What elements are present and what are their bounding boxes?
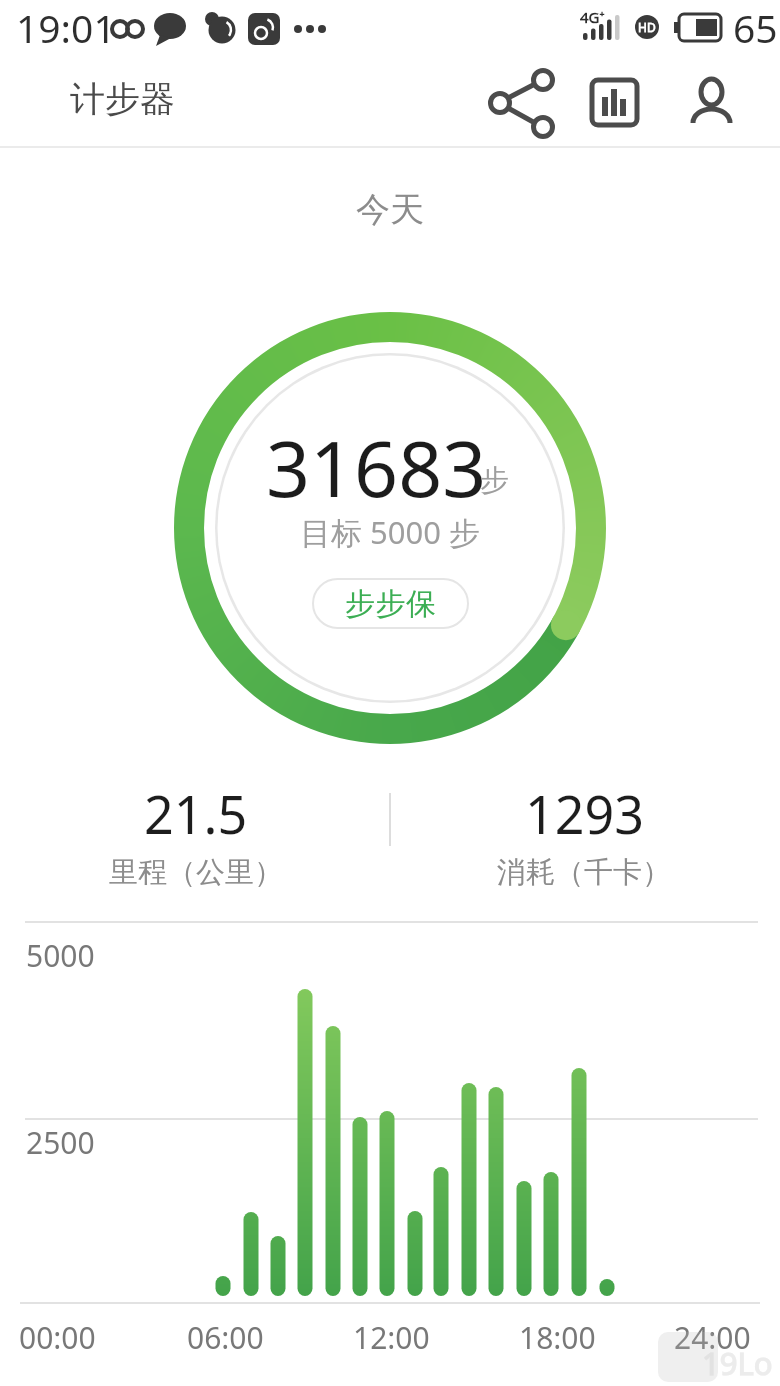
staticText: 目标 5000 步 [300, 511, 481, 549]
staticText: 步步保 [345, 585, 437, 623]
staticText: 步 [480, 462, 509, 498]
staticText: 计步器 [70, 77, 175, 121]
staticText: 1293 [525, 778, 644, 836]
staticText: 24:00 [674, 1317, 751, 1351]
staticText: 00:00 [19, 1317, 96, 1351]
staticText: 18:00 [519, 1317, 596, 1351]
staticText: 21.5 [144, 778, 248, 836]
staticText: 2500 [26, 1122, 95, 1158]
button[interactable]: 步步保 [312, 578, 469, 629]
staticText: 19:01 [16, 1, 116, 45]
staticText: 消耗（千卡） [497, 854, 671, 891]
button[interactable] [666, 78, 756, 128]
staticText: 65 [733, 1, 778, 45]
staticText: 里程（公里） [109, 854, 283, 891]
button[interactable] [570, 78, 660, 128]
staticText: 5000 [26, 935, 95, 971]
staticText: 19Lou [702, 1342, 780, 1382]
staticText: HD [638, 19, 656, 35]
staticText: 12:00 [353, 1317, 430, 1351]
staticText: 31683 [266, 415, 487, 520]
button[interactable] [476, 78, 566, 128]
staticText: 4G⁺ [580, 7, 605, 27]
staticText: 06:00 [187, 1317, 264, 1351]
staticText: 今天 [356, 188, 424, 228]
